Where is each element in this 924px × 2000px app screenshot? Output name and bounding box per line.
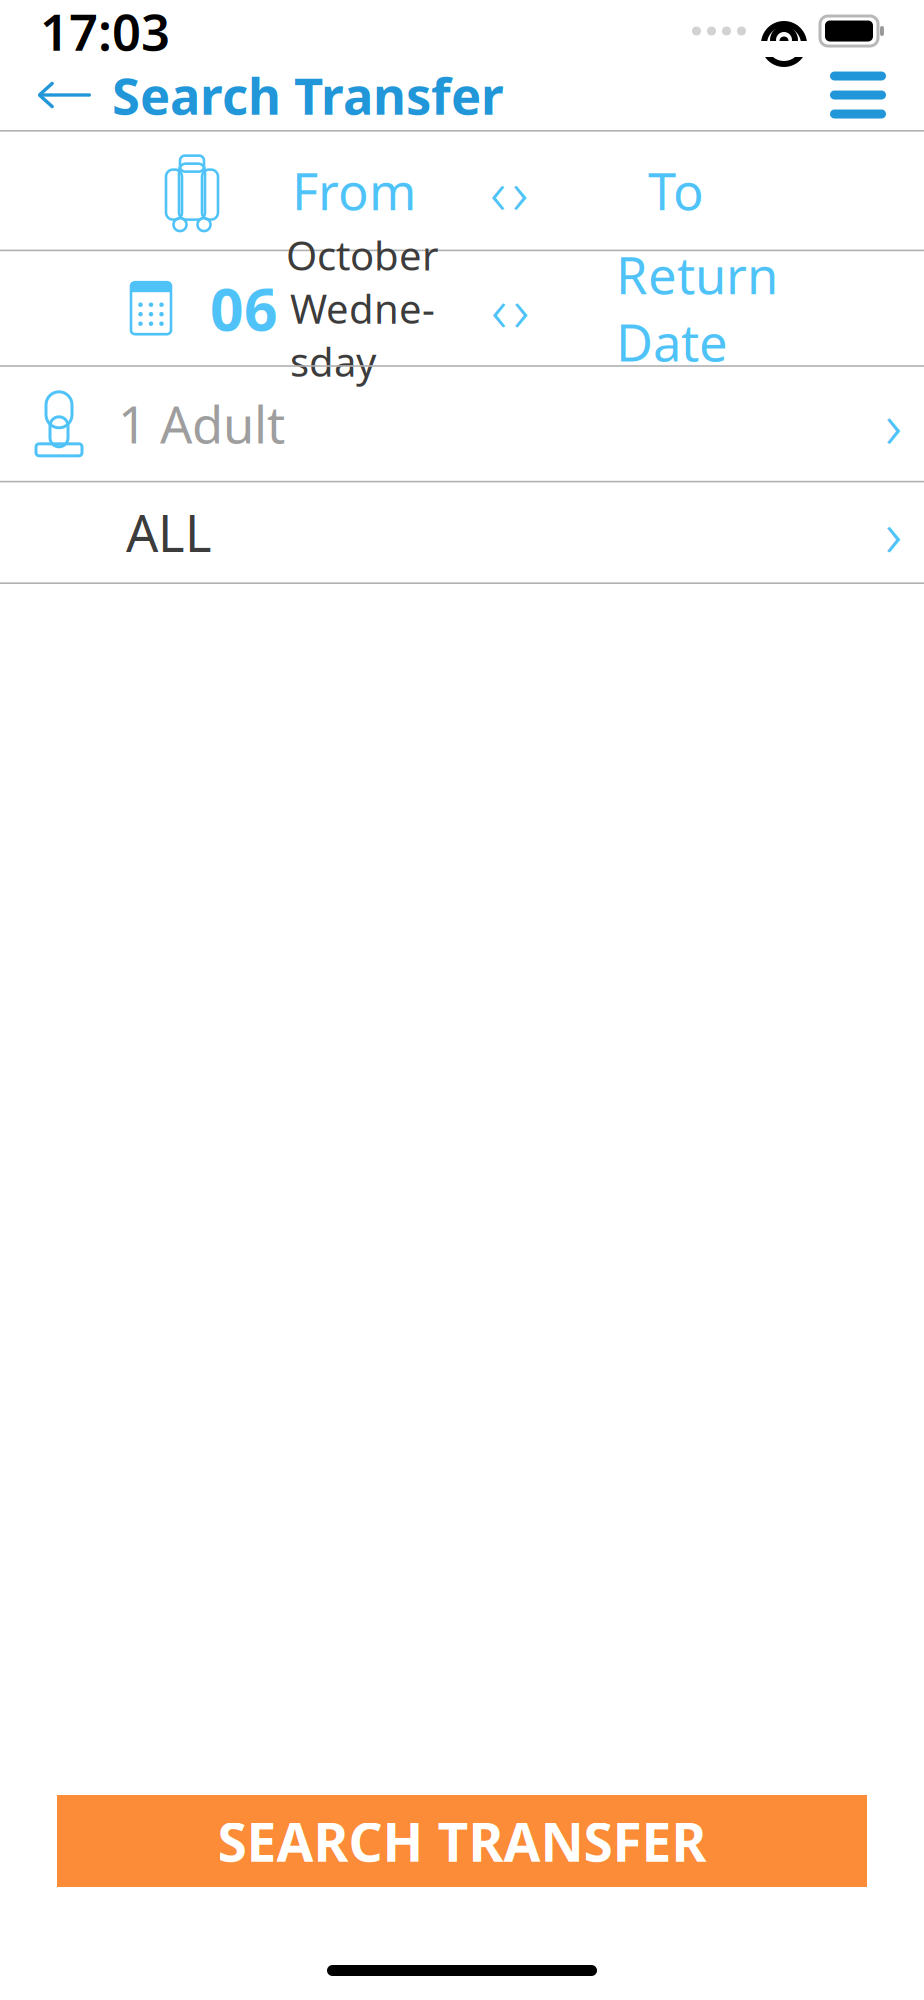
staticText: ›: [885, 381, 902, 466]
button[interactable]: Swap from and to: [458, 276, 562, 340]
staticText: ‹: [490, 150, 506, 231]
staticText: 06: [210, 269, 278, 347]
staticText: From: [292, 157, 416, 224]
button[interactable]: 1 Adult: [0, 367, 924, 481]
staticText: ›: [512, 150, 528, 231]
button[interactable]: To: [561, 143, 791, 239]
button[interactable]: ALL: [0, 482, 924, 582]
staticText: Search Transfer: [112, 61, 504, 129]
button[interactable]: Return Date: [562, 258, 832, 358]
staticText: October: [286, 228, 439, 282]
button[interactable]: Back: [28, 65, 102, 125]
staticText: ALL: [126, 499, 212, 566]
button[interactable]: 06: [210, 258, 458, 358]
staticText: Wednesday: [290, 282, 435, 388]
staticText: Return Date: [616, 241, 778, 375]
staticText: ›: [885, 490, 902, 575]
button[interactable]: SEARCH TRANSFER: [57, 1795, 867, 1887]
button[interactable]: From: [251, 143, 457, 239]
staticText: ›: [513, 267, 529, 349]
staticText: 17:03: [40, 0, 170, 65]
staticText: 1 Adult: [118, 390, 285, 457]
button[interactable]: Menu: [820, 65, 896, 125]
staticText: ‹: [491, 267, 507, 349]
button[interactable]: Swap from and to: [457, 159, 561, 223]
staticText: SEARCH TRANSFER: [217, 1806, 706, 1876]
staticText: To: [648, 157, 704, 224]
